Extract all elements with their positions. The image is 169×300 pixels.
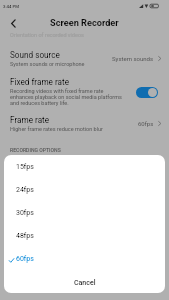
button[interactable]: 15fps <box>4 158 165 179</box>
button[interactable]: Fixed frame rate <box>0 75 169 108</box>
staticText: 48fps <box>16 232 34 240</box>
button[interactable]: 30fps <box>4 204 165 225</box>
staticText: 3:44 PM <box>3 4 20 9</box>
button[interactable]: Sound source <box>0 46 169 70</box>
staticText: Fixed frame rate <box>10 77 70 87</box>
staticText: Orientation of recorded videos <box>10 32 84 38</box>
staticText: 30fps <box>16 209 34 217</box>
button[interactable]: Frame rate <box>0 111 169 135</box>
staticText: Frame rate <box>10 115 50 125</box>
staticText: System sounds or microphone <box>10 61 85 67</box>
button[interactable]: 24fps <box>4 181 165 202</box>
button[interactable]: 60fps <box>4 250 165 271</box>
staticText: Screen Recorder <box>50 17 119 28</box>
staticText: Higher frame rates reduce motion blur <box>10 126 103 132</box>
staticText: Sound source <box>10 50 60 60</box>
staticText: System sounds <box>112 55 154 62</box>
staticText: 15fps <box>16 163 34 171</box>
button[interactable]: Back <box>3 13 23 33</box>
button[interactable]: 48fps <box>4 227 165 248</box>
staticText: Recording videos with fixed frame rate e… <box>10 88 124 106</box>
staticText: 60fps <box>138 120 154 127</box>
staticText: 60fps <box>16 255 34 263</box>
button[interactable]: Fixed frame rate toggle <box>136 87 158 98</box>
staticText: Cancel <box>74 279 96 287</box>
staticText: RECORDING OPTIONS <box>10 147 61 153</box>
button[interactable]: Cancel <box>4 272 165 293</box>
staticText: 24fps <box>16 186 34 194</box>
